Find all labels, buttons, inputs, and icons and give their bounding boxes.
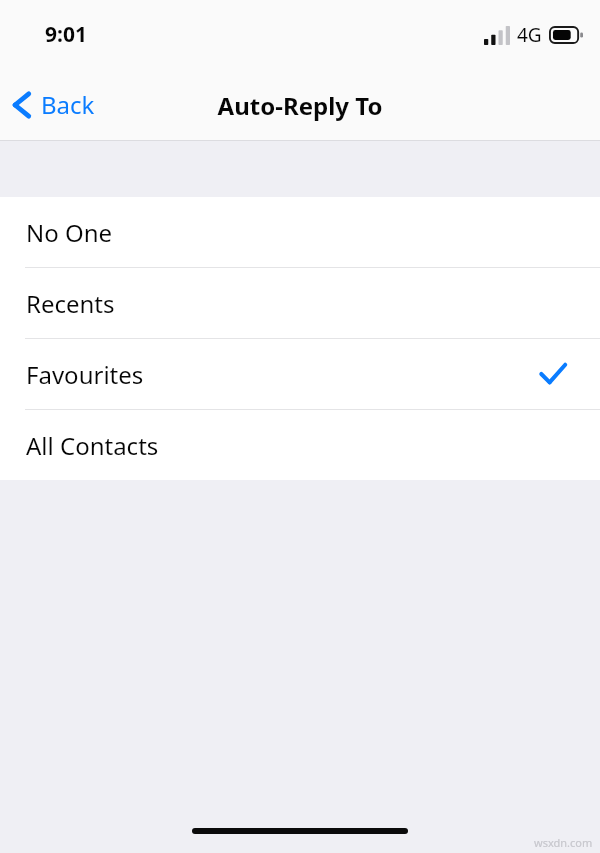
button[interactable]: Back: [0, 80, 109, 131]
button[interactable]: All Contacts: [0, 410, 600, 480]
staticText: No One: [26, 216, 113, 249]
button[interactable]: Recents: [0, 268, 600, 339]
staticText: Favourites: [26, 358, 144, 391]
button[interactable]: Favourites: [0, 339, 600, 410]
other: Selected: [540, 363, 566, 385]
staticText: 4G: [517, 22, 542, 48]
staticText: 9:01: [45, 20, 87, 49]
staticText: Auto-Reply To: [0, 89, 600, 122]
staticText: Back: [41, 88, 95, 121]
button[interactable]: No One: [0, 197, 600, 268]
staticText: wsxdn.com: [534, 835, 593, 850]
staticText: All Contacts: [26, 429, 159, 462]
staticText: Recents: [26, 287, 115, 320]
